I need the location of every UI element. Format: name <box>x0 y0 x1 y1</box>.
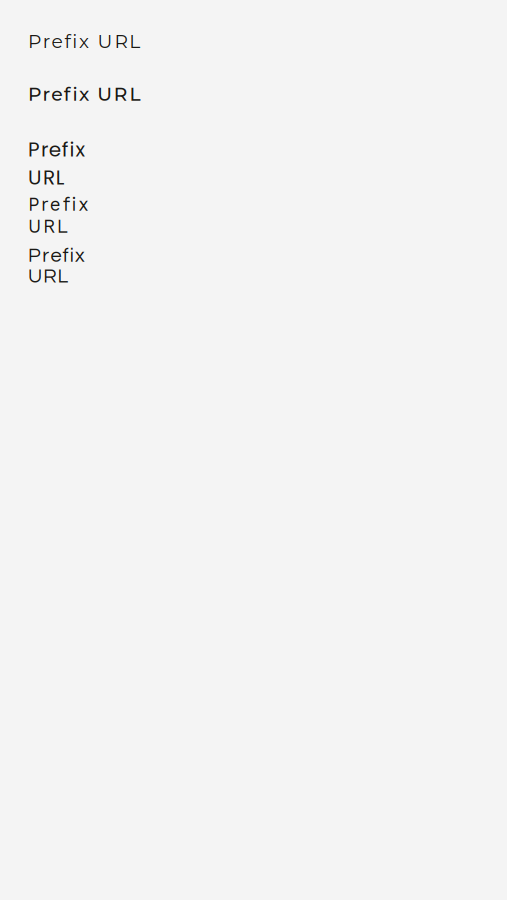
staticText: Prefix URL <box>28 83 140 106</box>
staticText: Prefix URL <box>28 30 140 53</box>
staticText: Prefix URL <box>28 245 132 266</box>
staticText: Prefix URL <box>28 135 129 163</box>
staticText: Prefix URL <box>28 193 138 215</box>
